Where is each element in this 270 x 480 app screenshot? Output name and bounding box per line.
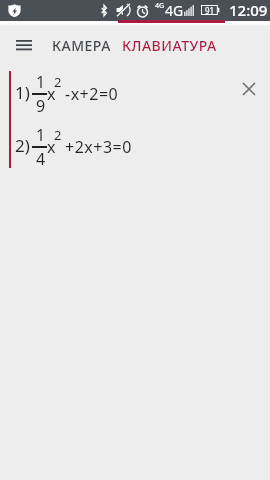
staticText: 4 bbox=[36, 148, 46, 170]
staticText: 1 bbox=[36, 124, 46, 146]
staticText: 91 bbox=[205, 5, 215, 15]
staticText: -x+2=0 bbox=[65, 83, 119, 105]
staticText: +2x+3=0 bbox=[65, 136, 132, 158]
staticText: 4G bbox=[165, 1, 184, 20]
staticText: КАМЕРА bbox=[52, 36, 111, 55]
staticText: 1 bbox=[36, 71, 46, 93]
button[interactable]: КАМЕРА bbox=[43, 28, 119, 62]
staticText: x bbox=[47, 83, 56, 105]
staticText: 12:09 bbox=[229, 0, 268, 20]
staticText: 9 bbox=[36, 95, 46, 117]
staticText: 2 bbox=[54, 126, 62, 144]
staticText: КЛАВИАТУРА bbox=[122, 36, 217, 55]
staticText: 1) bbox=[15, 81, 30, 104]
button[interactable]: КЛАВИАТУРА bbox=[116, 28, 222, 62]
staticText: 2 bbox=[54, 73, 62, 91]
button[interactable]: Close bbox=[237, 77, 261, 101]
staticText: 2) bbox=[15, 134, 30, 157]
staticText: 4G bbox=[155, 1, 165, 11]
staticText: x bbox=[47, 136, 56, 158]
button[interactable]: Menu bbox=[4, 28, 43, 62]
